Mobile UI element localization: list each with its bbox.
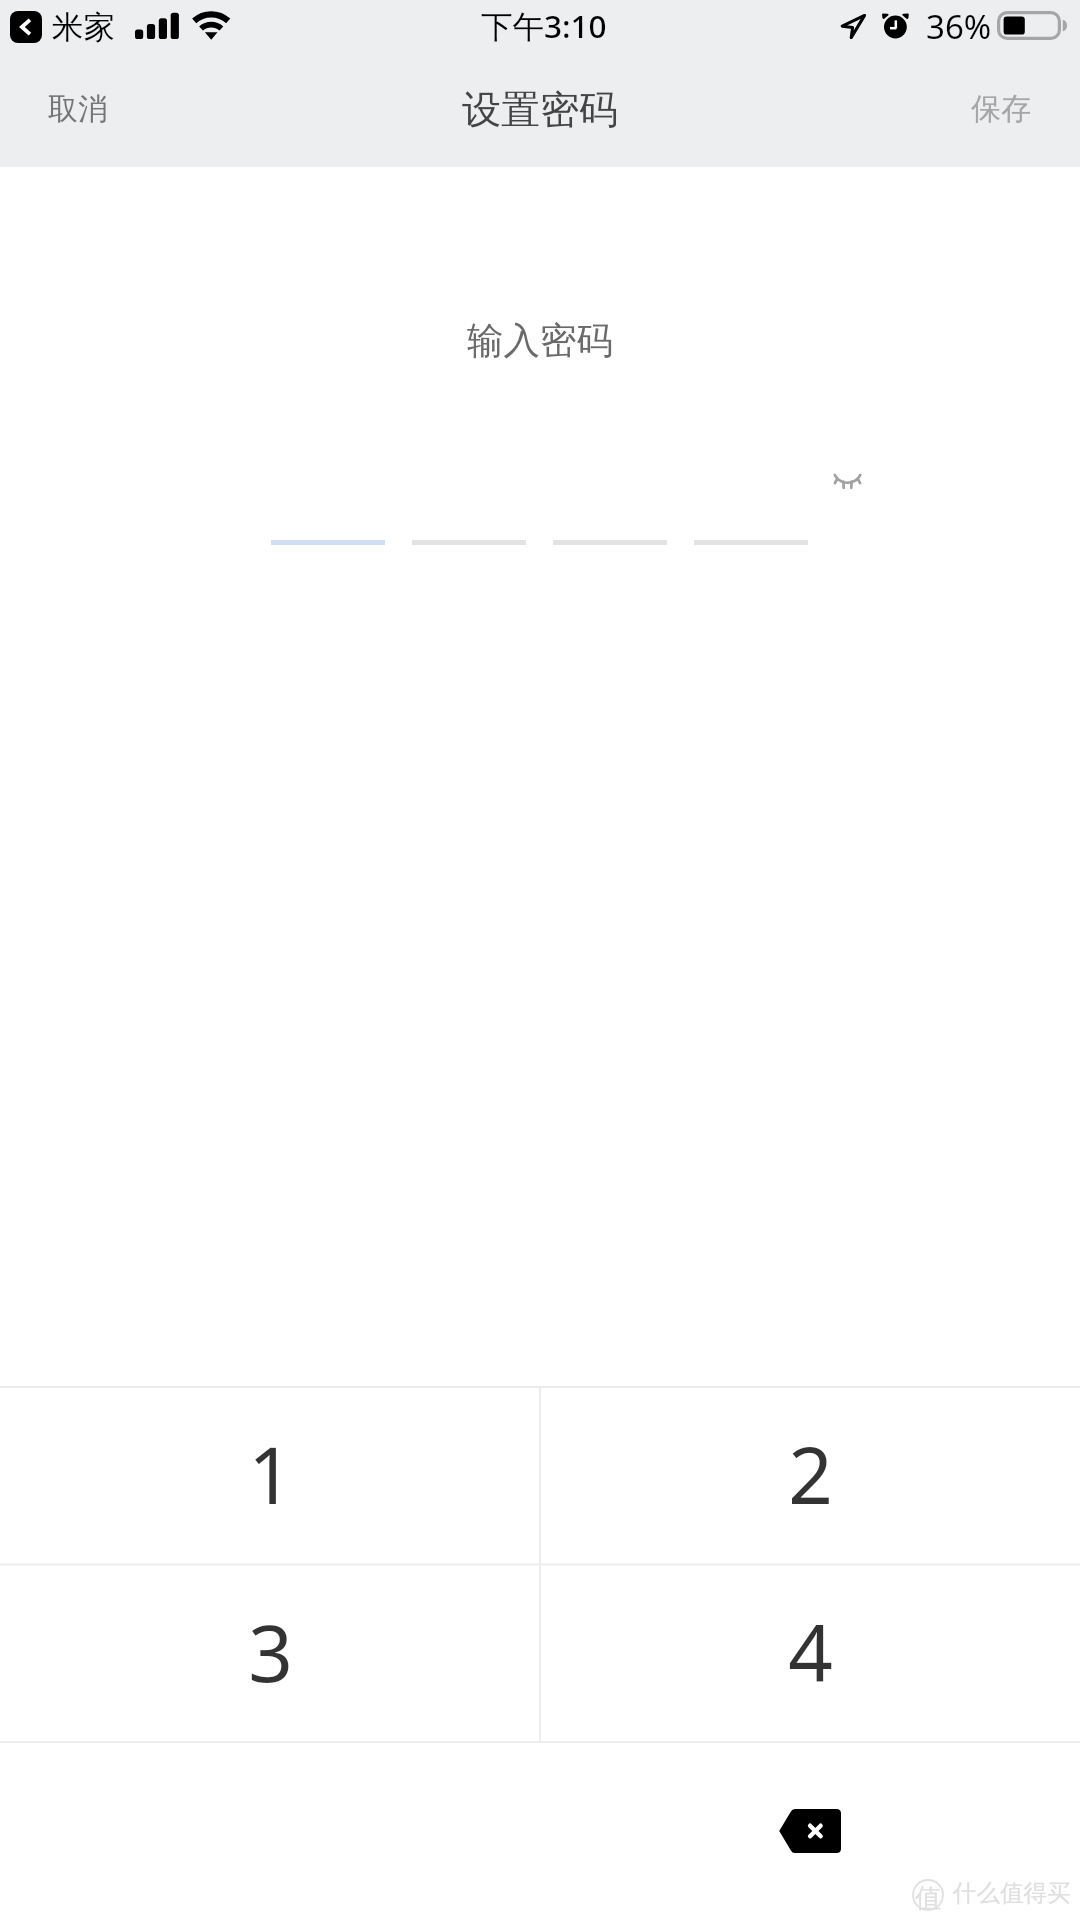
staticText: 设置密码 <box>462 85 618 134</box>
staticText: 36% <box>926 4 992 49</box>
staticText: 3 <box>248 1599 293 1705</box>
staticText: 米家 <box>52 8 115 48</box>
button[interactable]: Backspace <box>720 1742 900 1920</box>
staticText: 1 <box>248 1421 293 1527</box>
staticText: 保存 <box>971 90 1031 128</box>
staticText: 2 <box>788 1421 833 1527</box>
staticText: 输入密码 <box>467 318 613 364</box>
staticText: 取消 <box>48 90 108 128</box>
staticText: 4 <box>788 1599 833 1705</box>
staticText: 下午3:10 <box>481 4 607 47</box>
button[interactable]: Back to 米家 <box>10 11 42 43</box>
button[interactable]: Show password <box>806 442 890 524</box>
button[interactable]: 3 <box>0 1563 540 1740</box>
staticText: 什么值得买 <box>953 1878 1071 1908</box>
button[interactable]: 2 <box>540 1385 1080 1562</box>
button[interactable]: 4 <box>540 1563 1080 1740</box>
button[interactable]: 保存 <box>971 90 1031 128</box>
button[interactable]: 1 <box>0 1385 540 1562</box>
staticText: 值 <box>915 1882 941 1914</box>
button[interactable]: 取消 <box>48 90 108 128</box>
